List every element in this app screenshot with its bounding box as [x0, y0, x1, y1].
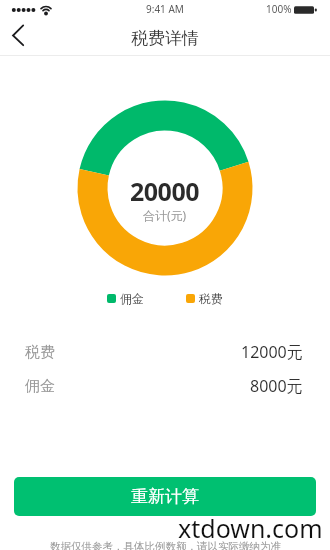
- staticText: 12000元: [241, 341, 303, 363]
- staticText: 数据仅供参考，具体比例数额，请以实际缴纳为准: [50, 540, 281, 550]
- staticText: xtdown.com: [178, 511, 323, 545]
- staticText: 佣金: [120, 291, 144, 306]
- staticText: 合计(元): [143, 207, 187, 223]
- button[interactable]: [0, 18, 37, 55]
- button[interactable]: 重新计算: [14, 477, 316, 516]
- staticText: 8000元: [250, 375, 303, 397]
- staticText: 税费详情: [131, 28, 199, 49]
- staticText: 佣金: [25, 377, 55, 396]
- button[interactable]: 税费: [0, 335, 330, 369]
- staticText: 100%: [266, 2, 292, 16]
- staticText: 税费: [25, 343, 55, 362]
- staticText: 9:41 AM: [146, 2, 184, 16]
- staticText: 税费: [199, 291, 223, 306]
- staticText: 20000: [130, 174, 200, 208]
- staticText: 重新计算: [131, 486, 199, 507]
- button[interactable]: 佣金: [0, 369, 330, 403]
